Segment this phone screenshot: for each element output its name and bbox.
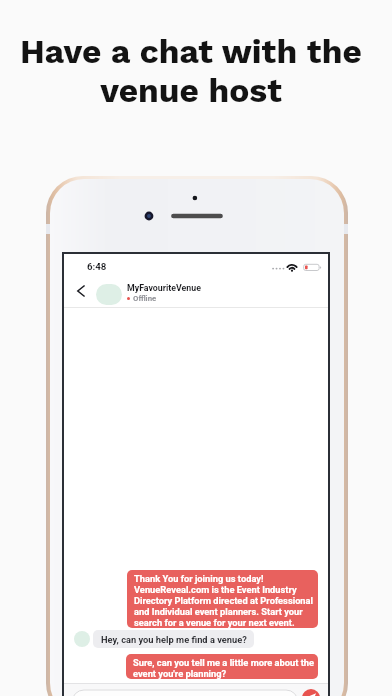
staticText: Thank You for joining us today! VenueRev…: [134, 573, 315, 628]
button[interactable]: Thank You for joining us today! VenueRev…: [127, 570, 318, 628]
button[interactable]: [72, 690, 298, 696]
staticText: Sure, can you tell me a little more abou…: [133, 657, 315, 679]
staticText: Offline: [133, 294, 157, 303]
staticText: 6:48: [87, 261, 107, 272]
staticText: Hey, can you help me find a venue?: [101, 634, 247, 645]
button[interactable]: Sure, can you tell me a little more abou…: [126, 654, 318, 679]
staticText: Have a chat with the venue host: [20, 32, 362, 110]
button[interactable]: Back: [73, 283, 89, 299]
button[interactable]: Hey, can you help me find a venue?: [93, 630, 254, 648]
button[interactable]: Send: [302, 689, 320, 696]
staticText: MyFavouriteVenue: [127, 283, 201, 293]
